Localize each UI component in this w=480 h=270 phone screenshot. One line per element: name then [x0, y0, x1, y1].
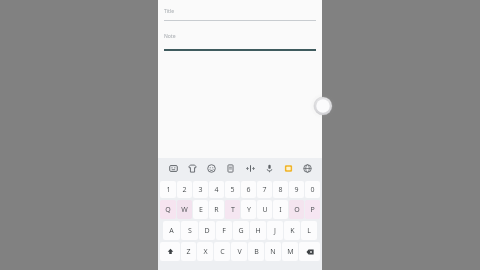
button[interactable]: V [231, 242, 247, 261]
staticText: 0 [310, 185, 315, 195]
staticText: L [307, 226, 311, 236]
button[interactable]: Voice input [262, 161, 276, 175]
staticText: T [231, 205, 235, 215]
staticText: C [220, 247, 225, 257]
staticText: 5 [230, 185, 235, 195]
button[interactable]: Z [181, 242, 196, 261]
button[interactable]: O [289, 200, 304, 219]
staticText: V [237, 247, 242, 257]
button[interactable]: 8 [273, 181, 288, 198]
staticText: Y [247, 205, 251, 215]
button[interactable]: 4 [209, 181, 224, 198]
staticText: F [222, 226, 226, 236]
button[interactable]: GIF [204, 161, 218, 175]
button[interactable]: R [209, 200, 224, 219]
button[interactable]: 0 [305, 181, 320, 198]
button[interactable]: Record [310, 93, 336, 119]
button[interactable]: 1 [160, 181, 176, 198]
staticText: H [255, 226, 261, 236]
staticText: 9 [294, 185, 299, 195]
staticText: R [214, 205, 219, 215]
button[interactable]: Clipboard [223, 161, 237, 175]
staticText: 6 [246, 185, 251, 195]
button[interactable]: Stickers [185, 161, 199, 175]
button[interactable]: Emoji kitchen [166, 161, 180, 175]
staticText: S [188, 226, 192, 236]
button[interactable]: 5 [225, 181, 240, 198]
button[interactable]: 2 [177, 181, 192, 198]
button[interactable]: Text editing [243, 161, 257, 175]
button[interactable]: L [301, 221, 317, 240]
staticText: U [262, 205, 268, 215]
staticText: O [294, 205, 300, 215]
button[interactable]: P [305, 200, 320, 219]
staticText: D [204, 226, 210, 236]
button[interactable]: 7 [257, 181, 272, 198]
staticText: Z [186, 247, 191, 257]
button[interactable]: Translate [281, 161, 295, 175]
button[interactable]: G [233, 221, 249, 240]
button[interactable]: Settings [300, 161, 314, 175]
button[interactable]: 6 [241, 181, 256, 198]
staticText: P [310, 205, 315, 215]
staticText: E [199, 205, 203, 215]
button[interactable]: Note [164, 33, 316, 49]
staticText: X [203, 247, 208, 257]
staticText: I [279, 205, 282, 215]
staticText: J [274, 226, 276, 236]
button[interactable]: F [216, 221, 232, 240]
button[interactable]: N [265, 242, 281, 261]
button[interactable]: Y [241, 200, 256, 219]
staticText: B [254, 247, 259, 257]
staticText: 7 [262, 185, 267, 195]
button[interactable]: I [273, 200, 288, 219]
staticText: K [290, 226, 295, 236]
staticText: 2 [182, 185, 187, 195]
button[interactable]: K [284, 221, 300, 240]
button[interactable]: 3 [193, 181, 208, 198]
staticText: 8 [278, 185, 283, 195]
staticText: G [238, 226, 244, 236]
button[interactable]: 9 [289, 181, 304, 198]
button[interactable]: B [248, 242, 264, 261]
staticText: M [287, 247, 294, 257]
button[interactable]: Title [164, 2, 316, 20]
button[interactable]: U [257, 200, 272, 219]
button[interactable]: M [282, 242, 298, 261]
staticText: 1 [166, 185, 171, 195]
button[interactable]: D [199, 221, 215, 240]
staticText: Q [165, 205, 171, 215]
staticText: 4 [214, 185, 219, 195]
button[interactable]: C [214, 242, 230, 261]
button[interactable]: Backspace [299, 242, 320, 261]
button[interactable]: S [181, 221, 198, 240]
staticText: Note [164, 33, 176, 40]
staticText: A [169, 226, 174, 236]
button[interactable]: H [250, 221, 266, 240]
button[interactable]: E [193, 200, 208, 219]
button[interactable]: Shift [160, 242, 180, 261]
button[interactable]: T [225, 200, 240, 219]
staticText: 3 [198, 185, 203, 195]
button[interactable]: W [177, 200, 192, 219]
button[interactable]: Q [160, 200, 176, 219]
button[interactable]: A [163, 221, 180, 240]
button[interactable]: J [267, 221, 283, 240]
staticText: W [181, 205, 188, 215]
staticText: N [270, 247, 276, 257]
button[interactable]: X [197, 242, 213, 261]
staticText: Title [164, 8, 174, 15]
